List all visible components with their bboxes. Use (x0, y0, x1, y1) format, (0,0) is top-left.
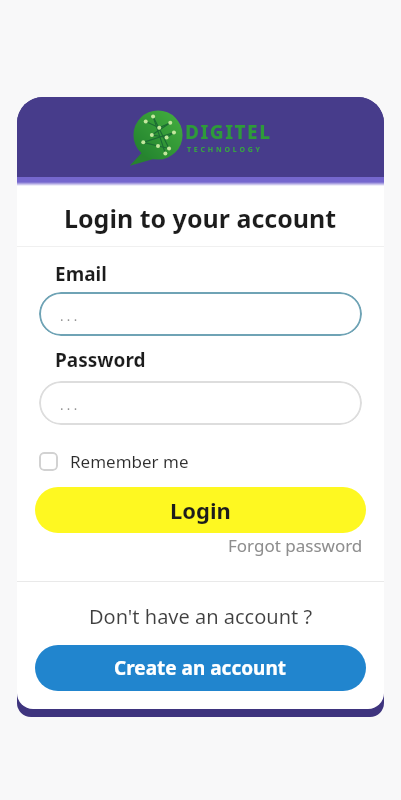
staticText: . . . (60, 396, 78, 414)
staticText: Remember me (70, 450, 189, 473)
button[interactable]: Login (35, 487, 366, 533)
staticText: Email (55, 261, 107, 287)
staticText: Create an account (114, 655, 287, 681)
button[interactable]: Create an account (35, 645, 366, 691)
button[interactable]: Remember me (39, 450, 189, 473)
button[interactable]: . . . (39, 292, 362, 336)
staticText: Password (55, 347, 146, 373)
staticText: Don't have an account ? (89, 603, 313, 630)
staticText: Login (170, 495, 231, 525)
button[interactable]: . . . (39, 381, 362, 425)
button[interactable]: Forgot password (228, 534, 363, 557)
staticText: . . . (60, 307, 78, 325)
staticText: TECHNOLOGY (187, 145, 263, 155)
staticText: Login to your account (64, 201, 337, 235)
staticText: DIGITEL (185, 119, 272, 145)
